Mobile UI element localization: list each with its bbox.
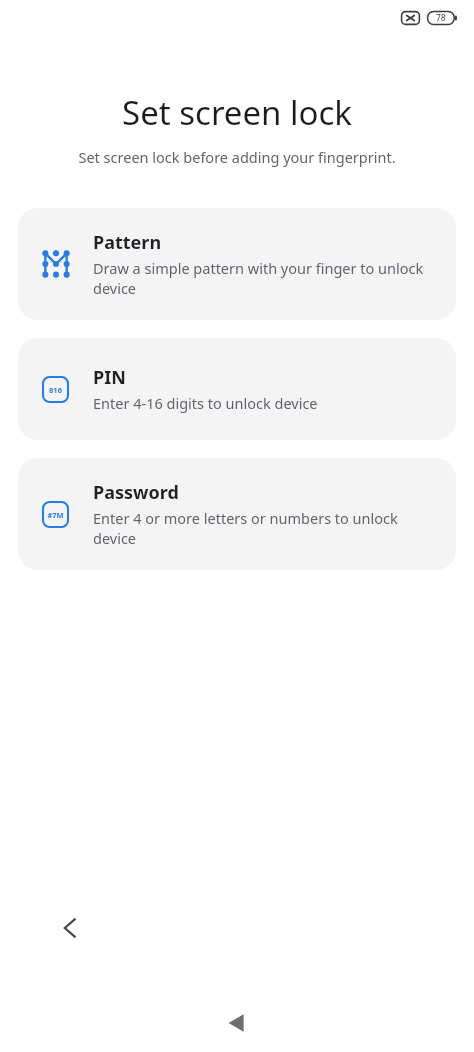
- staticText: 78: [436, 12, 446, 24]
- staticText: #7M: [47, 510, 64, 520]
- staticText: Set screen lock before adding your finge…: [0, 147, 474, 167]
- staticText: Draw a simple pattern with your finger t…: [93, 258, 442, 298]
- button[interactable]: System back: [213, 999, 261, 1047]
- staticText: PIN: [93, 365, 126, 390]
- button[interactable]: Back: [46, 904, 94, 952]
- staticText: Set screen lock: [0, 90, 474, 135]
- button[interactable]: 816: [18, 338, 456, 440]
- staticText: 816: [49, 385, 62, 395]
- staticText: Pattern: [93, 230, 162, 255]
- button[interactable]: #7M: [18, 458, 456, 570]
- staticText: Enter 4 or more letters or numbers to un…: [93, 508, 442, 548]
- staticText: Enter 4-16 digits to unlock device: [93, 393, 318, 413]
- staticText: Password: [93, 480, 179, 505]
- button[interactable]: Pattern: [18, 208, 456, 320]
